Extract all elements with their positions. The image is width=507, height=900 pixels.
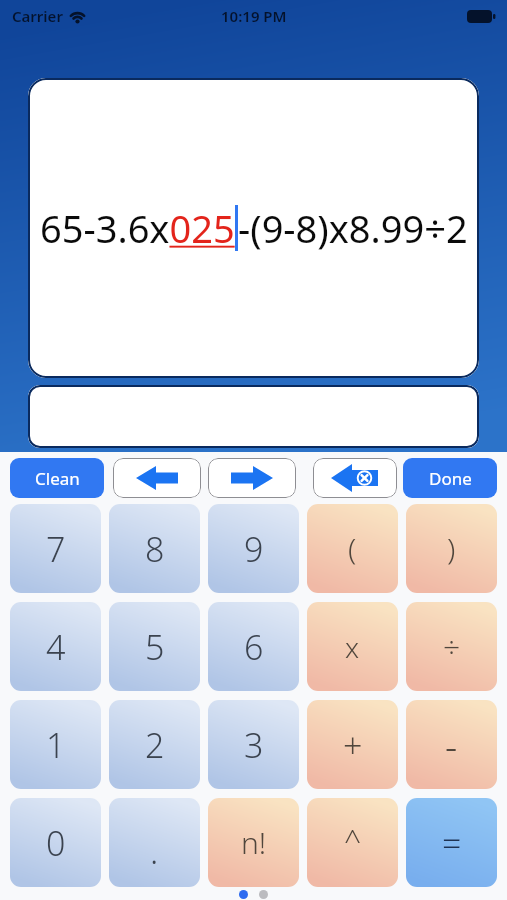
staticText: Clean [35,467,80,490]
staticText: 0 [46,820,66,866]
staticText: ^ [344,819,362,860]
staticText: = [442,820,462,866]
button[interactable]: ) [406,504,497,593]
staticText: . [150,828,159,874]
button[interactable]: 2 [109,700,200,789]
button[interactable]: 8 [109,504,200,593]
staticText: 8 [145,526,165,572]
button[interactable]: - [406,700,497,789]
staticText: n! [241,822,267,863]
staticText: Carrier [12,6,63,26]
staticText: 9 [244,526,264,572]
staticText: 6 [244,624,264,670]
staticText: 10:19 PM [221,6,287,26]
button[interactable]: ^ [307,798,398,887]
staticText: Done [429,467,472,490]
button[interactable]: 3 [208,700,299,789]
button[interactable]: Clean [10,458,104,498]
button[interactable] [313,458,397,498]
button[interactable]: 7 [10,504,101,593]
button[interactable]: 5 [109,602,200,691]
button[interactable]: 4 [10,602,101,691]
button[interactable]: 0 [10,798,101,887]
staticText: - [445,719,458,771]
staticText: 3 [244,722,264,768]
button[interactable]: 9 [208,504,299,593]
staticText: -(9-8)x8.99÷2 [238,202,468,254]
staticText: 5 [145,624,165,670]
button[interactable]: ( [307,504,398,593]
staticText: + [343,722,363,768]
staticText: ) [447,528,456,569]
staticText: 1 [46,722,66,768]
staticText: x [345,628,360,666]
button[interactable]: 1 [10,700,101,789]
staticText: 65-3.6x025 [40,202,235,254]
button[interactable]: = [406,798,497,887]
staticText: 2 [145,722,165,768]
button[interactable]: Done [403,458,497,498]
button[interactable] [113,458,201,498]
button[interactable]: + [307,700,398,789]
button[interactable]: n! [208,798,299,887]
staticText: 4 [46,624,66,670]
button[interactable]: ÷ [406,602,497,691]
button[interactable]: . [109,798,200,887]
button[interactable]: x [307,602,398,691]
staticText: 7 [46,526,66,572]
button[interactable]: 6 [208,602,299,691]
button[interactable] [28,385,479,448]
button[interactable]: 65-3.6x025 [28,78,479,378]
button[interactable] [208,458,296,498]
staticText: ÷ [443,626,461,667]
staticText: ( [348,528,357,569]
